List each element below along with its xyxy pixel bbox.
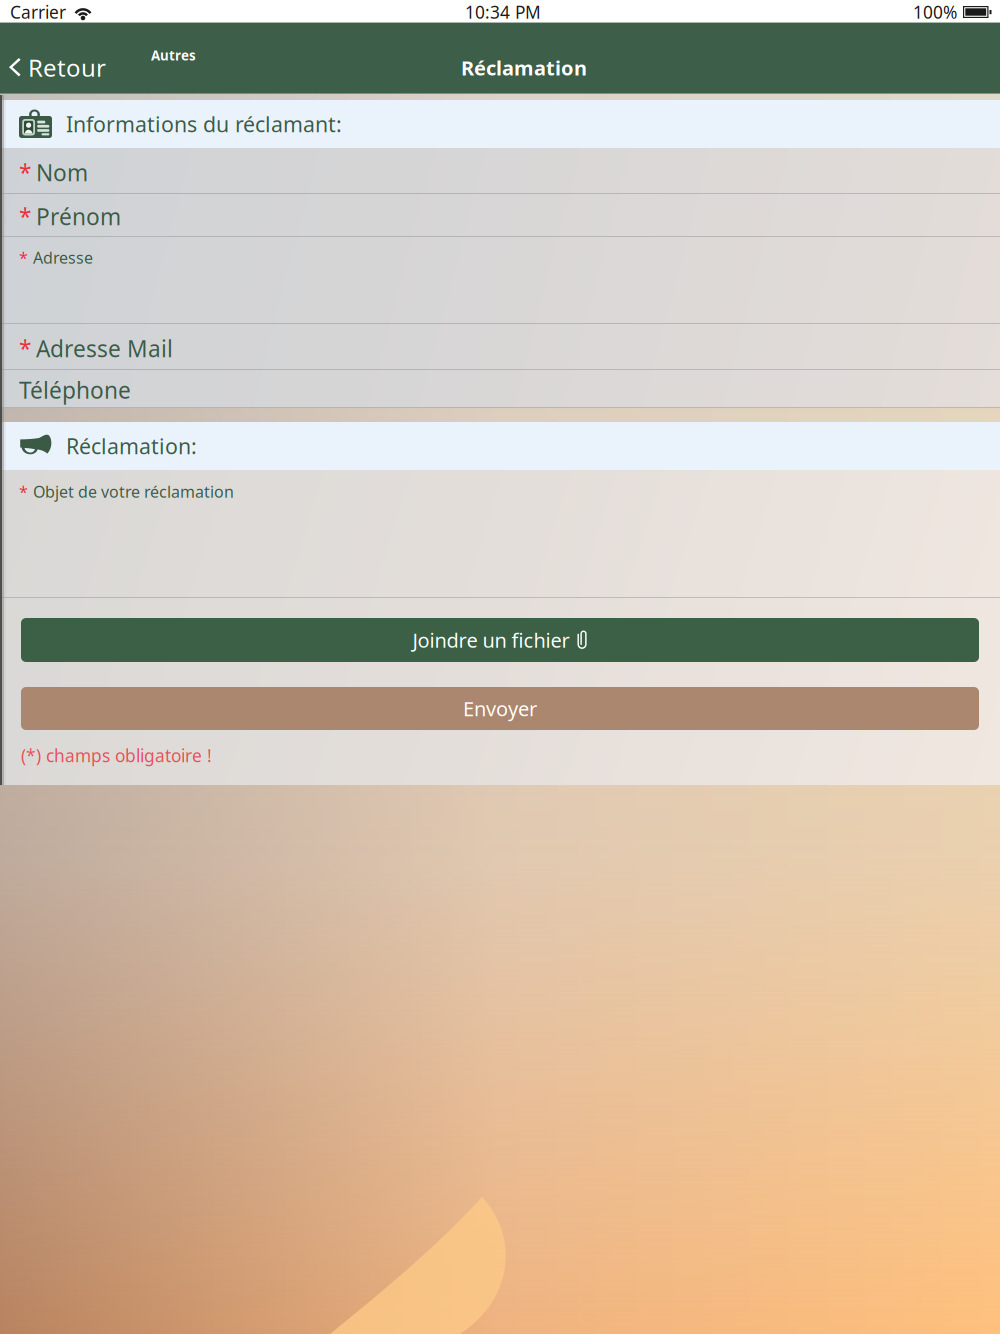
staticText: Retour — [28, 52, 106, 83]
staticText: Prénom — [36, 201, 121, 231]
staticText: Adresse — [33, 247, 93, 268]
staticText: Envoyer — [463, 695, 537, 722]
button[interactable]: Retour — [0, 23, 120, 96]
button[interactable]: Envoyer — [21, 687, 979, 730]
staticText: Nom — [36, 157, 88, 187]
staticText: Téléphone — [19, 375, 131, 405]
staticText: Objet de votre réclamation — [33, 481, 234, 502]
staticText: Carrier — [10, 0, 66, 23]
staticText: Réclamation — [461, 55, 587, 81]
staticText: Informations du réclamant: — [66, 110, 342, 138]
staticText: * — [19, 157, 31, 187]
staticText: 100% — [913, 0, 957, 23]
staticText: * — [19, 201, 31, 231]
staticText: (*) champs obligatoire ! — [21, 744, 212, 767]
staticText: Réclamation: — [66, 432, 197, 460]
staticText: 10:34 PM — [465, 0, 541, 23]
staticText: Autres — [151, 47, 196, 64]
staticText: * — [19, 247, 28, 268]
button[interactable]: Joindre un fichier — [21, 618, 979, 662]
staticText: * — [19, 481, 28, 502]
staticText: Joindre un fichier — [412, 627, 569, 653]
button[interactable]: Autres — [0, 23, 208, 72]
staticText: * — [19, 333, 31, 363]
staticText: Adresse Mail — [36, 333, 173, 363]
